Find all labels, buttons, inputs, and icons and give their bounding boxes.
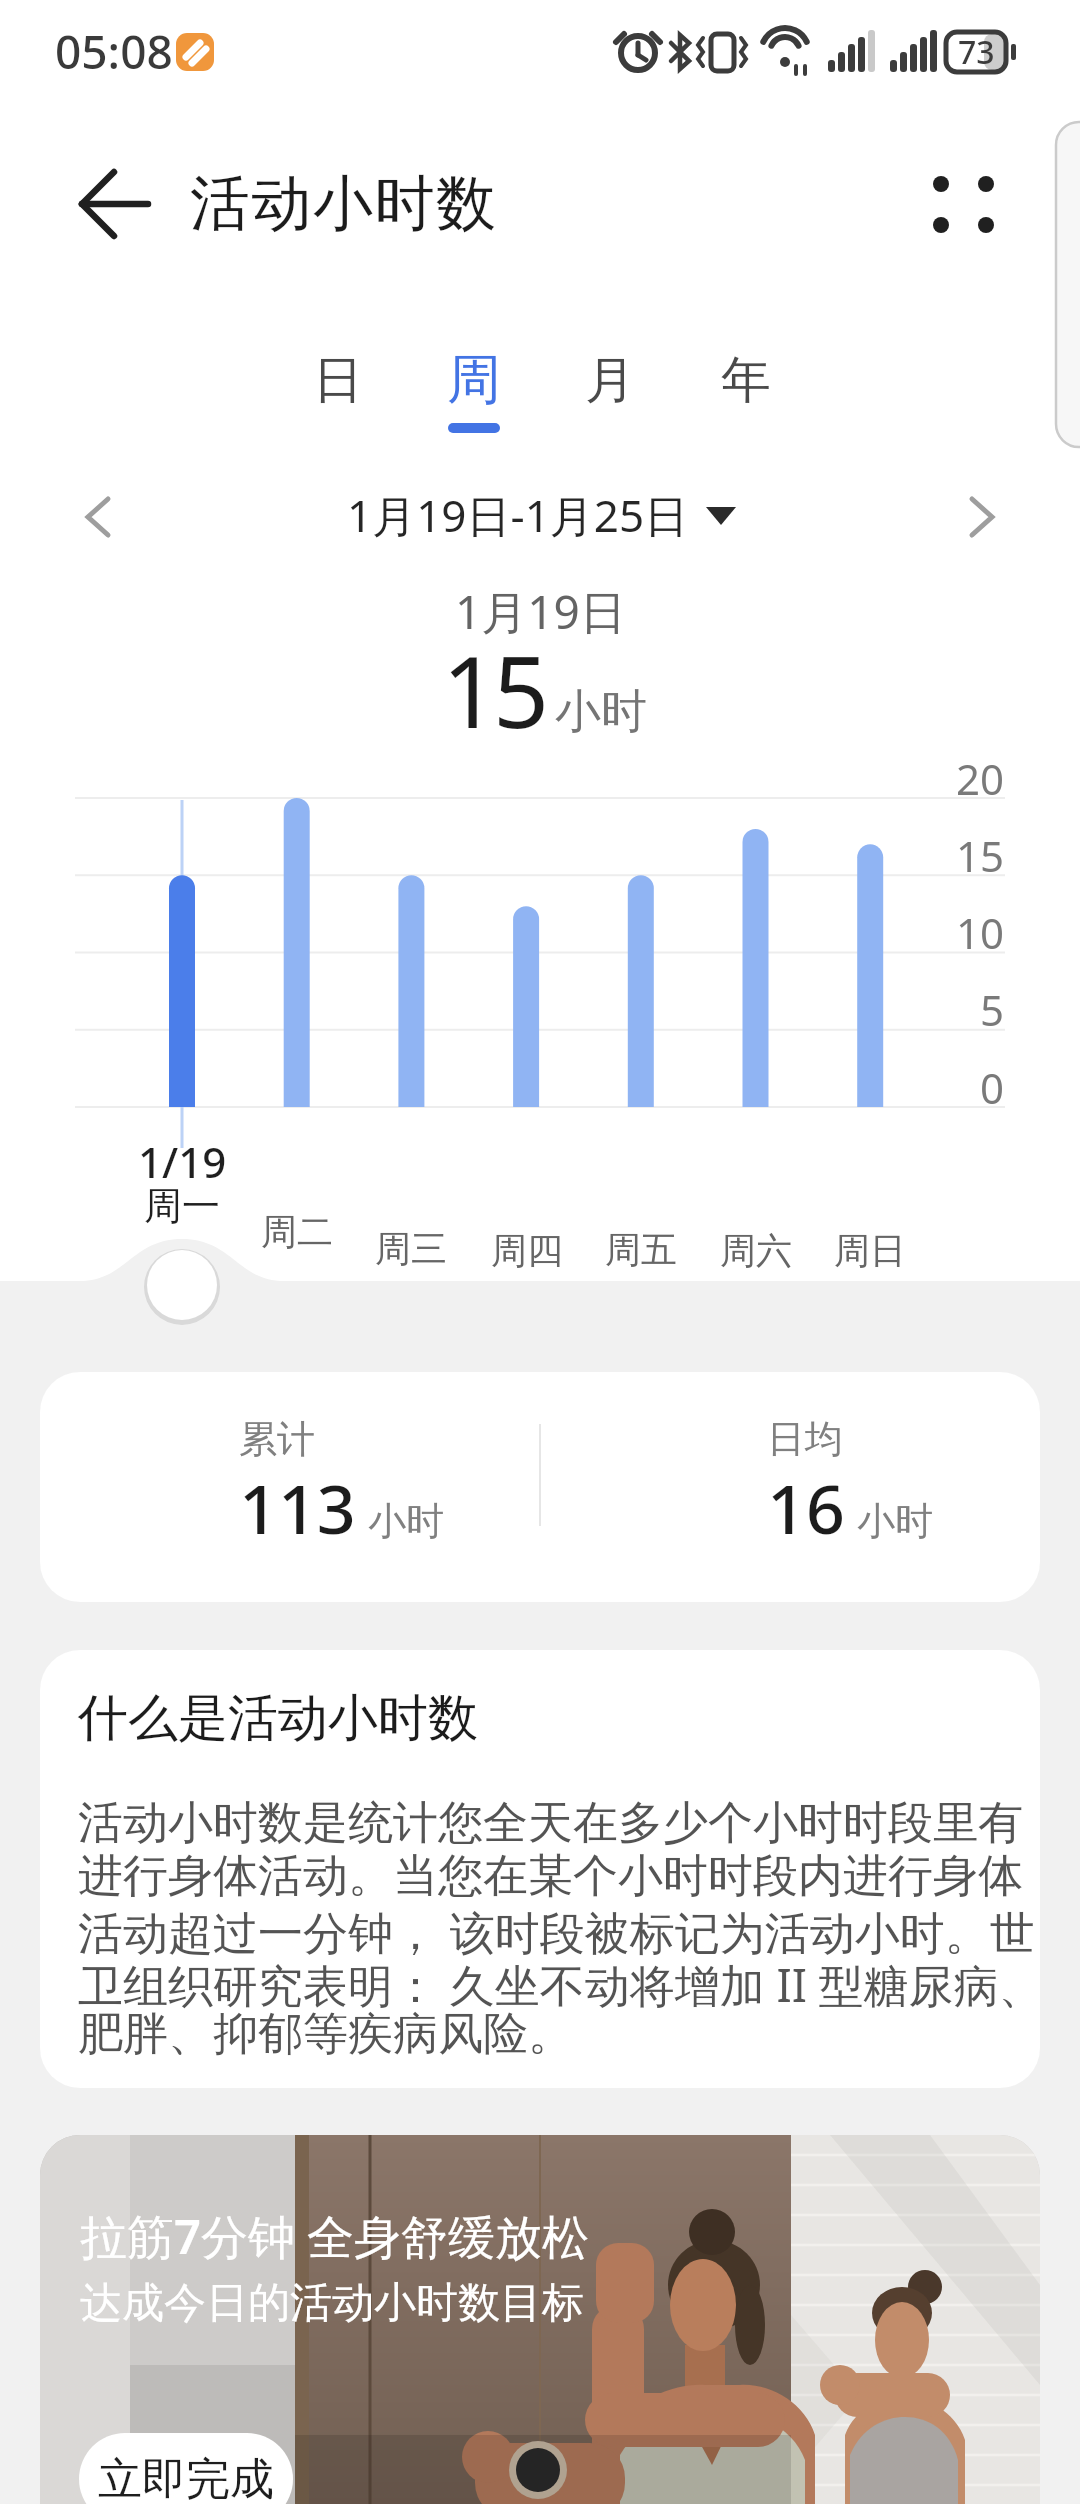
staticText: 周六 xyxy=(720,1228,792,1273)
staticText: 拉筋7分钟 全身舒缓放松 xyxy=(80,2204,590,2268)
staticText: 周四 xyxy=(491,1228,563,1273)
staticText: 15 xyxy=(956,827,1005,884)
staticText: 什么是活动小时数 xyxy=(78,1687,478,1750)
staticText: 小时 xyxy=(555,683,647,741)
staticText: 周一 xyxy=(144,1182,220,1230)
staticText: 周三 xyxy=(375,1226,447,1271)
staticText: 活动小时数 xyxy=(190,166,498,242)
staticText: 达成今日的活动小时数目标 xyxy=(80,2277,584,2330)
staticText: 活动超过一分钟， 该时段被标记为活动小时。世 xyxy=(78,1901,1035,1962)
staticText: 年 xyxy=(721,349,771,412)
staticText: 卫组织研究表明： 久坐不动将增加 II 型糖尿病、 xyxy=(78,1954,1044,2015)
button[interactable] xyxy=(60,480,140,556)
staticText: 05:08 xyxy=(55,20,173,83)
button[interactable] xyxy=(915,160,1015,250)
button[interactable] xyxy=(60,160,170,250)
staticText: 周 xyxy=(447,346,501,414)
staticText: 立即完成 xyxy=(98,2452,274,2504)
button[interactable]: 周 xyxy=(416,340,532,420)
staticText: 113 xyxy=(239,1461,356,1554)
staticText: 活动小时数是统计您全天在多少个小时时段里有 xyxy=(78,1795,1023,1852)
staticText: 进行身体活动。当您在某个小时时段内进行身体 xyxy=(78,1848,1023,1905)
button[interactable] xyxy=(340,483,740,553)
staticText: 小时 xyxy=(368,1497,444,1545)
staticText: 周五 xyxy=(605,1227,677,1272)
staticText: 1月19日 xyxy=(455,580,626,643)
button[interactable]: 年 xyxy=(688,340,804,420)
staticText: 日 xyxy=(313,349,363,412)
button[interactable]: 月 xyxy=(552,340,668,420)
staticText: 0 xyxy=(980,1059,1005,1116)
button[interactable]: 拉筋7分钟 全身舒缓放松 xyxy=(40,2135,1040,2504)
staticText: 月 xyxy=(585,349,635,412)
staticText: 1/19 xyxy=(138,1133,227,1190)
button[interactable]: 日 xyxy=(280,340,396,420)
staticText: 1月19日-1月25日 xyxy=(347,485,689,545)
staticText: 73 xyxy=(958,30,995,74)
staticText: 小时 xyxy=(857,1497,933,1545)
staticText: 10 xyxy=(956,904,1005,961)
staticText: 周日 xyxy=(834,1228,906,1273)
staticText: 累计 xyxy=(239,1415,315,1463)
staticText: 周二 xyxy=(261,1209,333,1254)
staticText: 15 xyxy=(442,623,545,756)
button[interactable]: 立即完成 xyxy=(79,2433,293,2504)
button[interactable] xyxy=(950,480,1030,556)
staticText: 肥胖、抑郁等疾病风险。 xyxy=(78,2006,573,2063)
staticText: 16 xyxy=(767,1461,845,1554)
staticText: 日均 xyxy=(767,1415,843,1463)
staticText: 20 xyxy=(956,750,1005,807)
staticText: 5 xyxy=(980,981,1005,1038)
